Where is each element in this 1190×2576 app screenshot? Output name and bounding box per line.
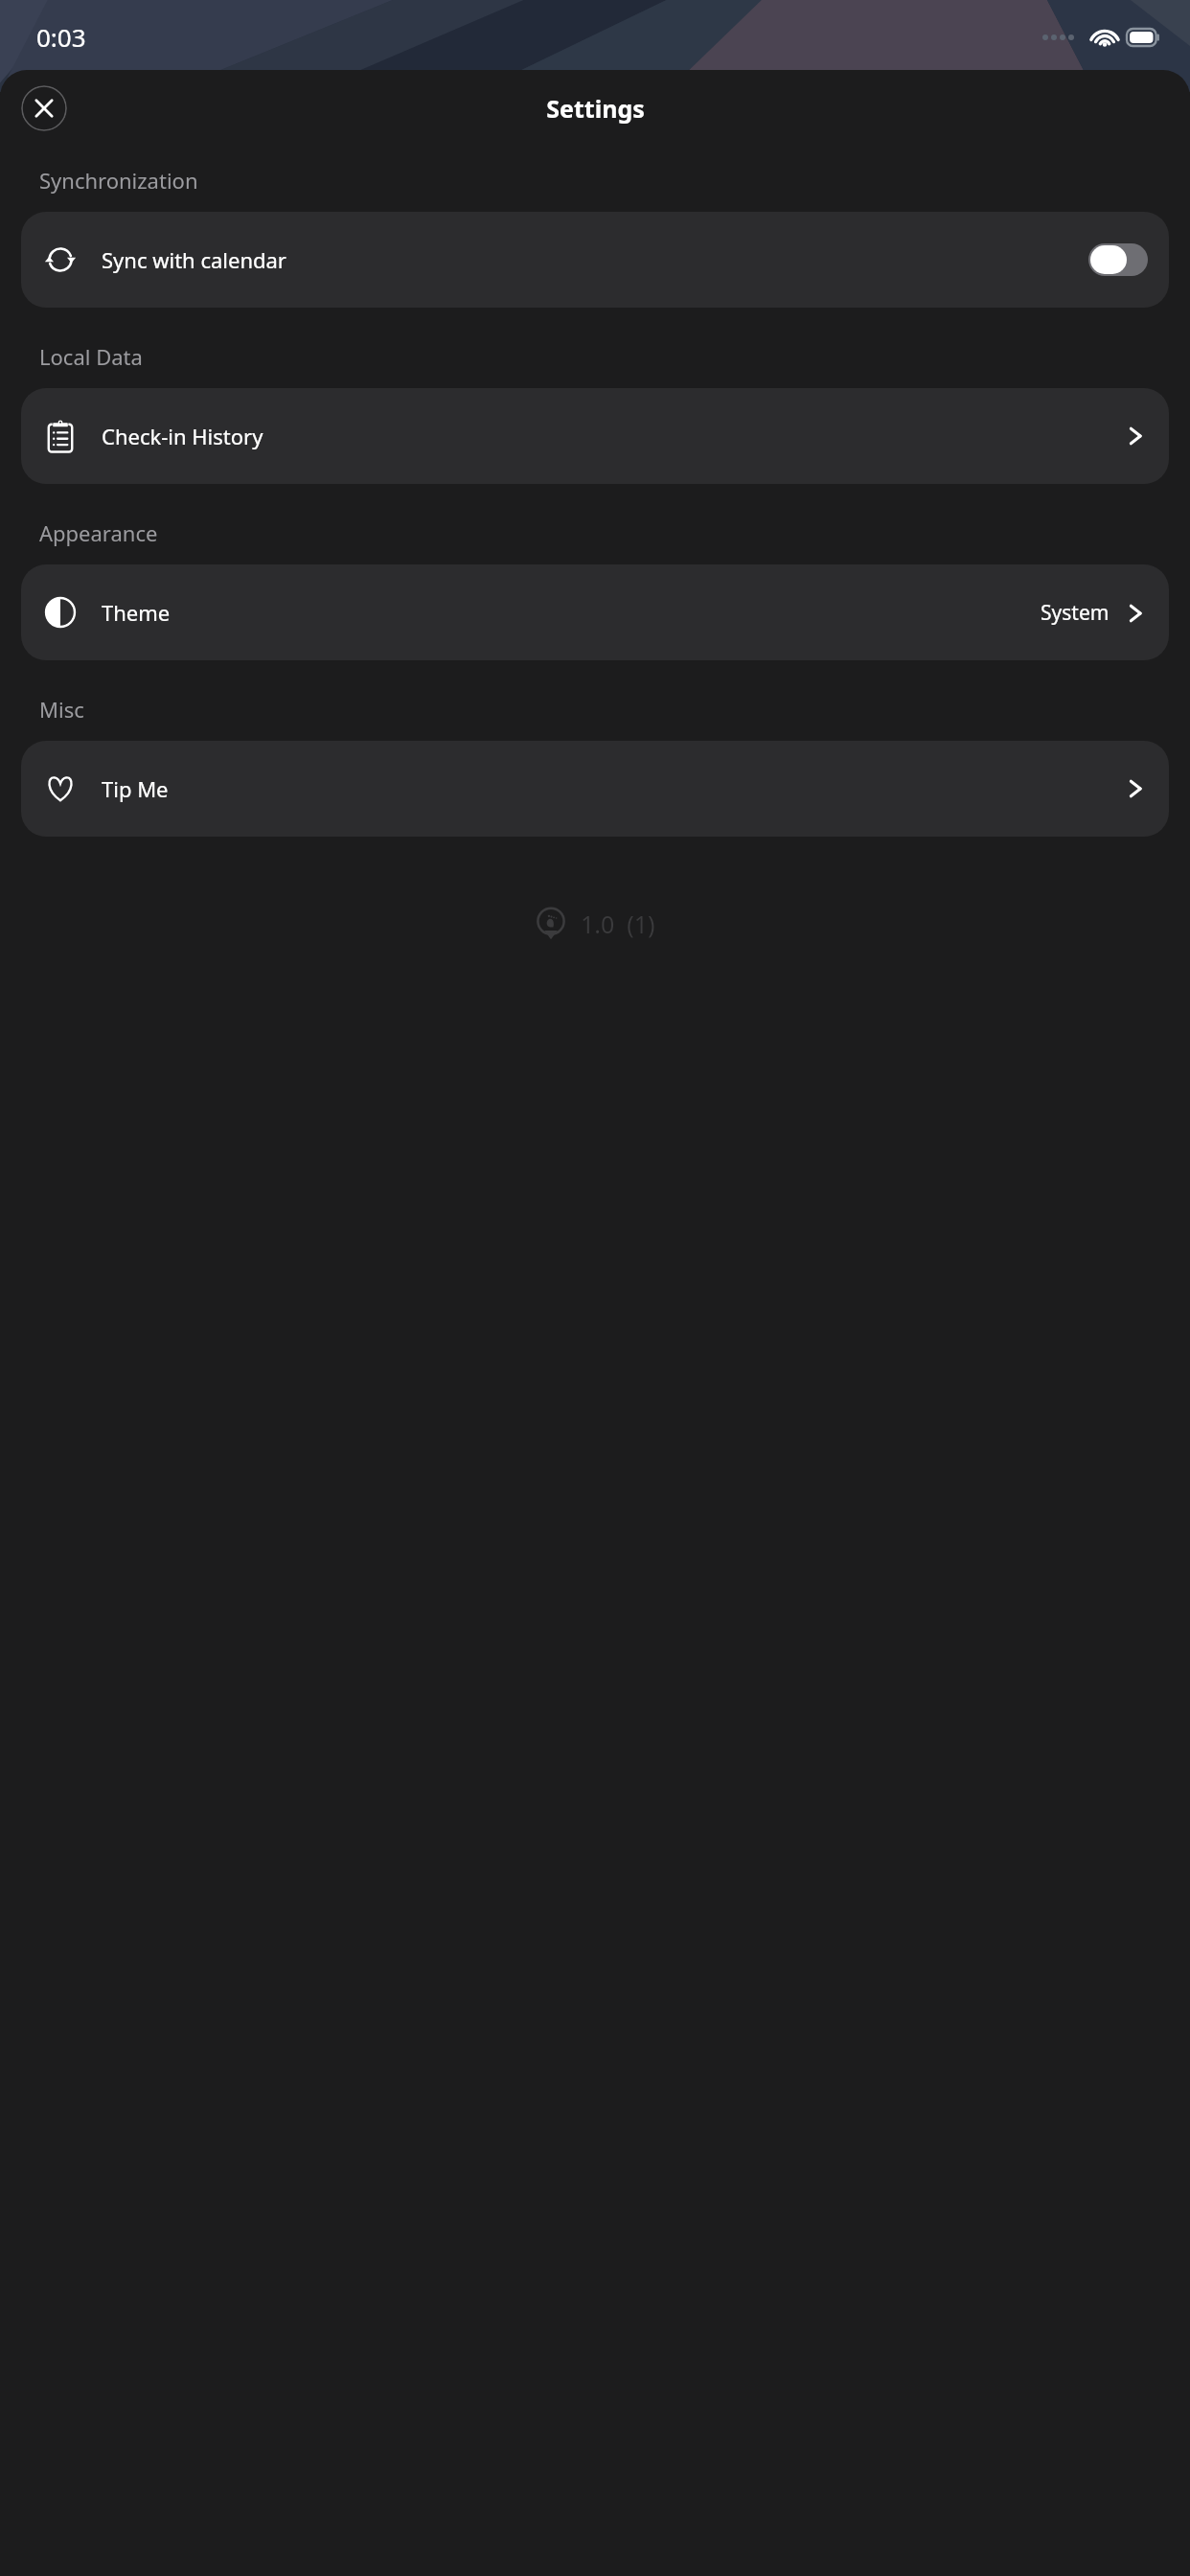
button[interactable]: Theme xyxy=(21,564,1169,660)
button[interactable]: Close xyxy=(21,85,67,131)
button[interactable]: Sync with calendar toggle xyxy=(1088,243,1148,276)
staticText: Misc xyxy=(39,695,1190,724)
staticText: Tip Me xyxy=(102,774,1123,803)
staticText: Theme xyxy=(102,598,1041,627)
button[interactable]: Sync with calendar xyxy=(21,212,1169,308)
staticText: Sync with calendar xyxy=(102,245,1088,274)
staticText: 1.0 (1) xyxy=(581,908,655,940)
staticText: 0:03 xyxy=(36,20,86,54)
staticText: Check-in History xyxy=(102,422,1123,450)
button[interactable]: Check-in History xyxy=(21,388,1169,484)
staticText: Local Data xyxy=(39,342,1190,371)
button[interactable]: Tip Me xyxy=(21,741,1169,837)
staticText: System xyxy=(1041,599,1110,627)
staticText: Appearance xyxy=(39,518,1190,547)
staticText: Settings xyxy=(546,92,645,125)
staticText: Synchronization xyxy=(39,166,1190,195)
